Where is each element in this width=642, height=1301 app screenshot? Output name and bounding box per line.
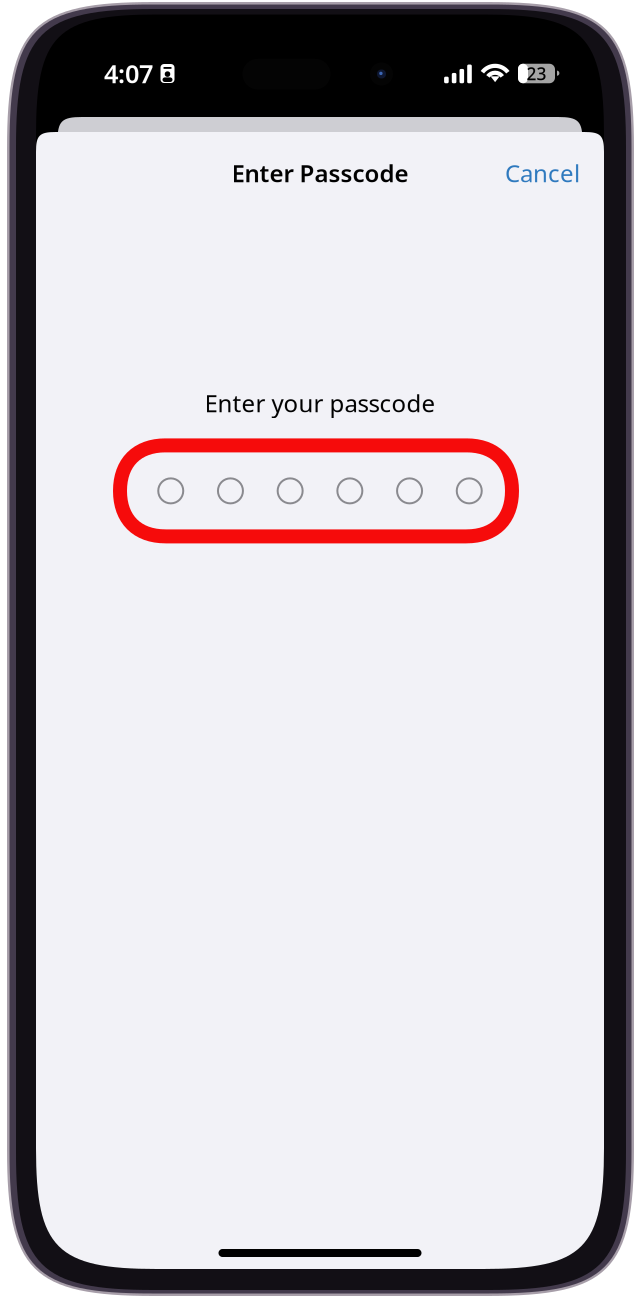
staticText: 4:07 [104, 57, 153, 90]
staticText: Enter Passcode [231, 157, 408, 189]
staticText: 23 [526, 62, 546, 85]
button[interactable]: Passcode field [117, 438, 523, 544]
button[interactable]: Cancel [481, 145, 604, 201]
staticText: Cancel [505, 157, 580, 189]
staticText: Enter your passcode [204, 387, 435, 419]
